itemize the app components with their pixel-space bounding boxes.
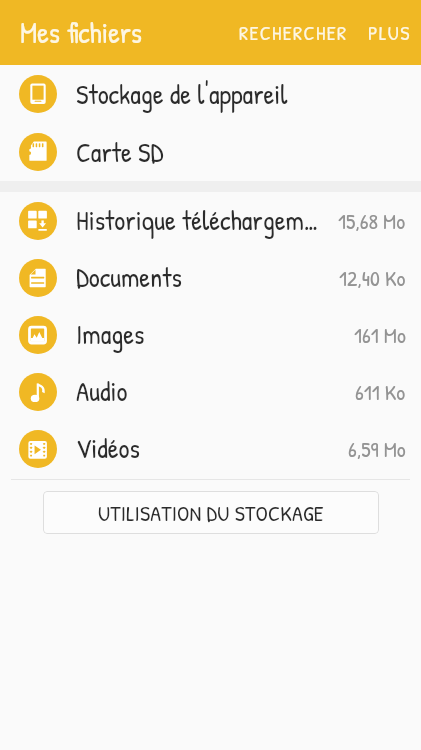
staticText: Vidéos: [76, 430, 348, 467]
staticText: 12,40 Ko: [339, 263, 406, 293]
other: Audio: [19, 373, 57, 411]
button[interactable]: RECHERCHER: [231, 7, 356, 58]
other: Documents: [19, 259, 57, 297]
staticText: Historique téléchargem…: [76, 202, 338, 239]
staticText: 15,68 Mo: [338, 206, 406, 236]
staticText: Mes fichiers: [20, 13, 143, 52]
staticText: 161 Mo: [354, 320, 406, 350]
staticText: 6,59 Mo: [348, 434, 406, 464]
staticText: 611 Ko: [355, 377, 406, 407]
button[interactable]: UTILISATION DU STOCKAGE: [43, 491, 379, 534]
staticText: Carte SD: [76, 134, 421, 171]
staticText: Images: [76, 316, 354, 353]
button[interactable]: Videos: [0, 420, 421, 477]
button[interactable]: Documents: [0, 249, 421, 306]
staticText: Documents: [76, 259, 339, 296]
button[interactable]: Device storage: [0, 65, 421, 123]
staticText: RECHERCHER: [239, 19, 348, 46]
button[interactable]: Images: [0, 306, 421, 363]
staticText: UTILISATION DU STOCKAGE: [98, 498, 324, 528]
button[interactable]: PLUS: [360, 7, 419, 58]
other: Download history: [19, 202, 57, 240]
staticText: PLUS: [368, 19, 411, 46]
other: Videos: [19, 430, 57, 468]
other: Images: [19, 316, 57, 354]
other: SD card: [19, 133, 57, 171]
button[interactable]: SD card: [0, 123, 421, 181]
staticText: Stockage de l'appareil: [76, 76, 421, 113]
staticText: Audio: [76, 373, 355, 410]
button[interactable]: Download history: [0, 192, 421, 249]
other: Device storage: [19, 75, 57, 113]
button[interactable]: Audio: [0, 363, 421, 420]
